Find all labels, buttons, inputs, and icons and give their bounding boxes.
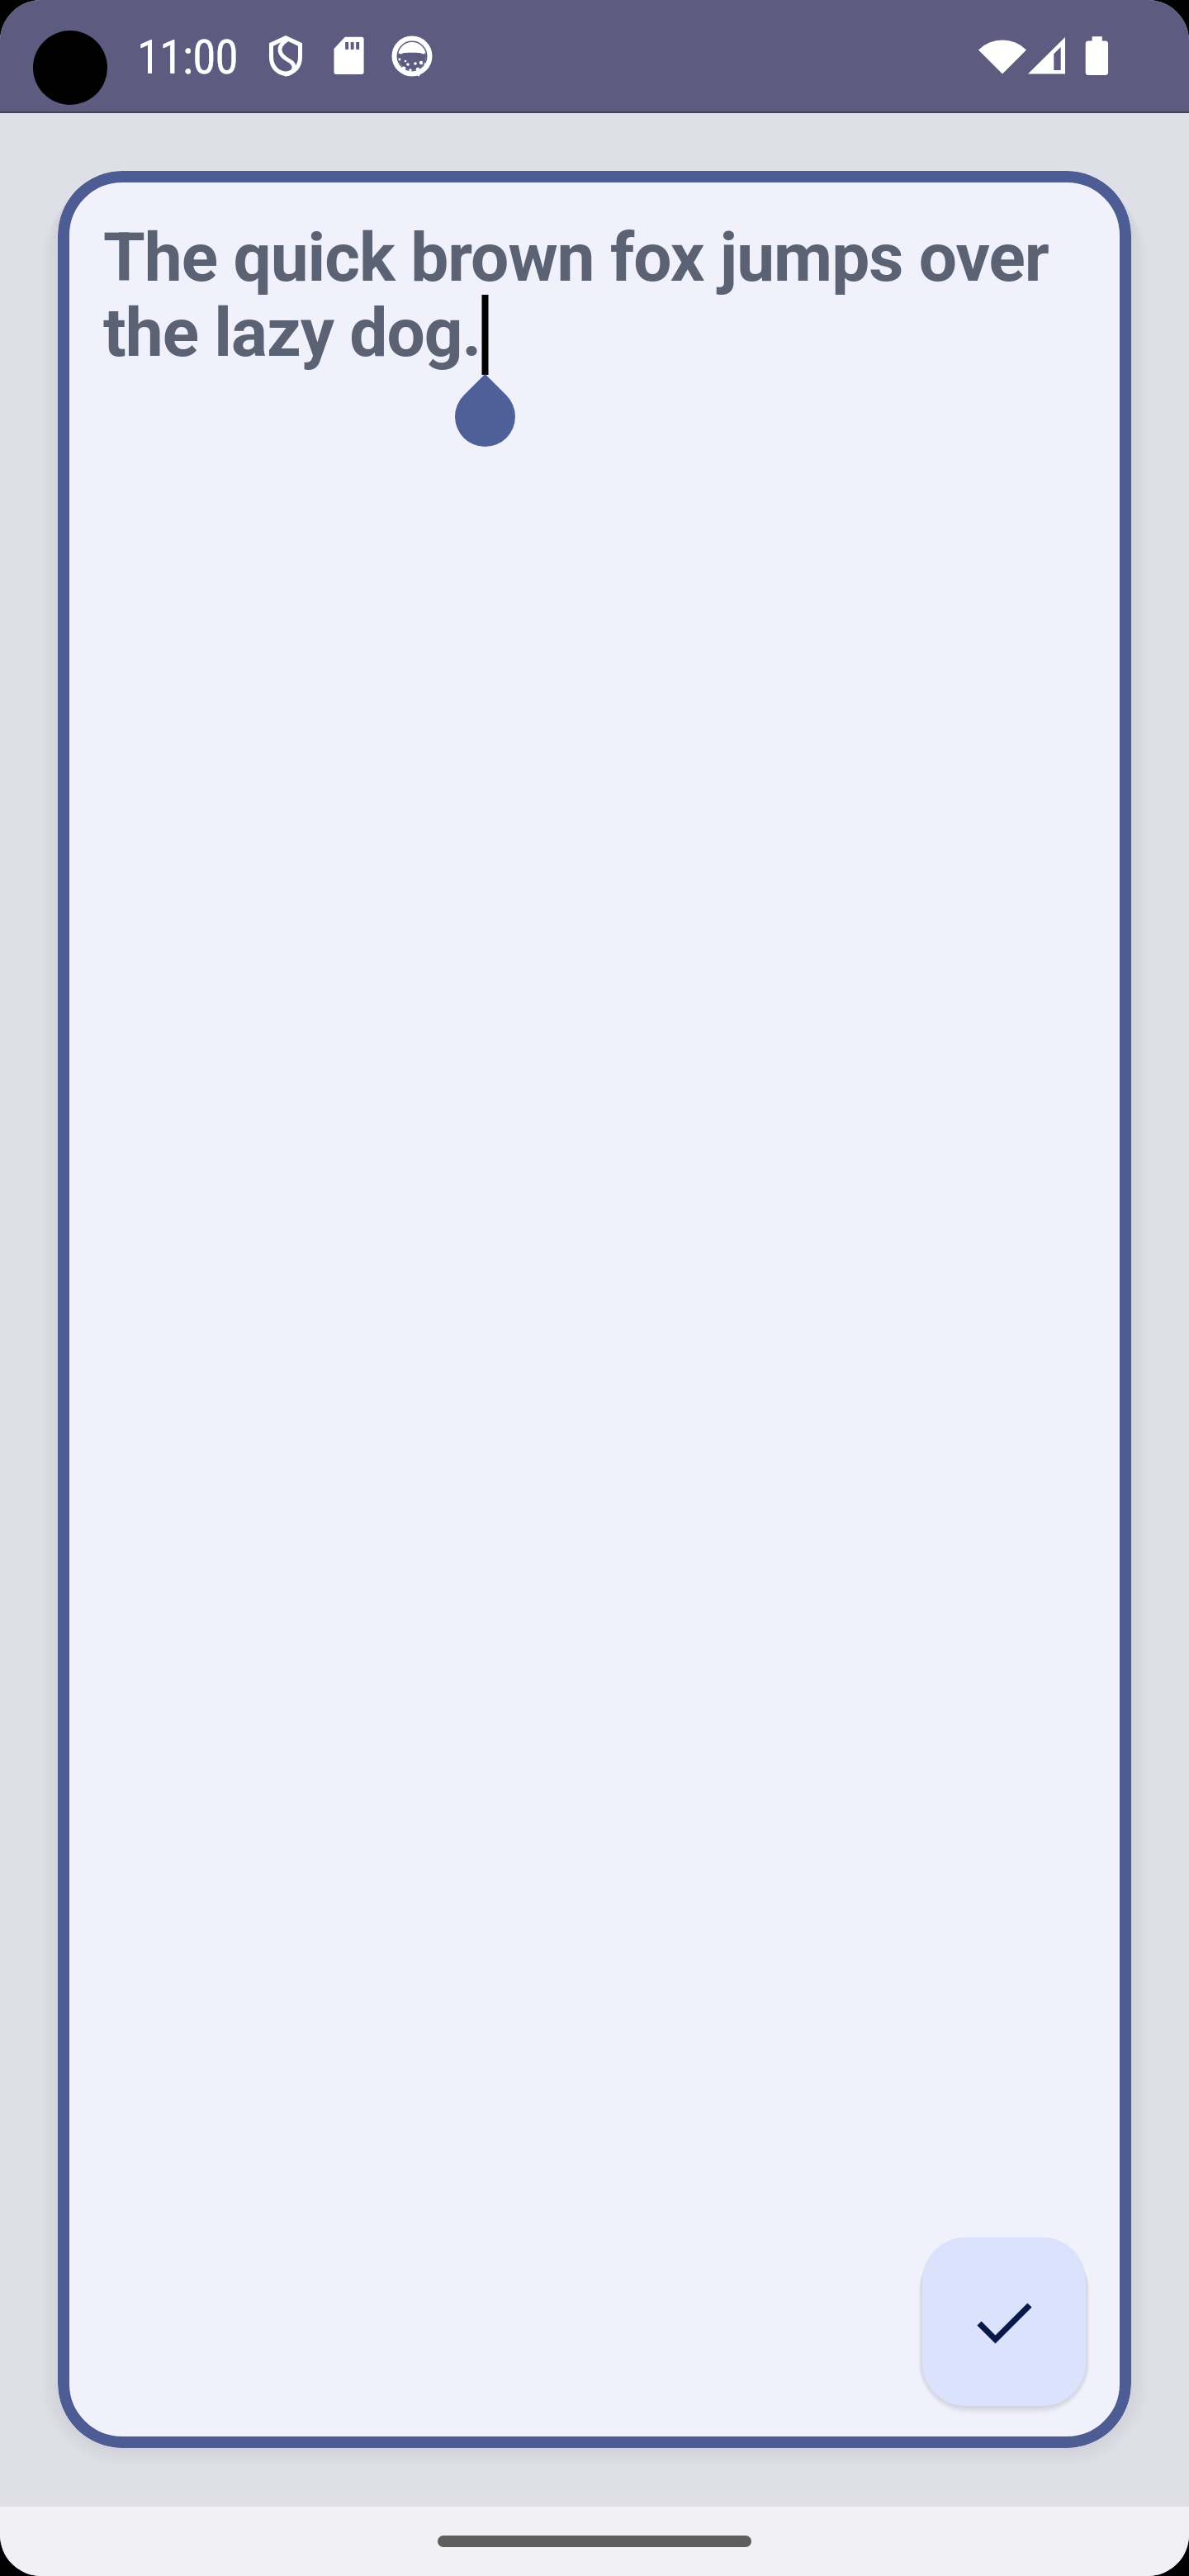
staticText: 11:00 (137, 30, 238, 85)
button[interactable]: The quick brown fox jumps over the lazy … (58, 171, 1131, 2448)
button[interactable]: Save note (922, 2237, 1086, 2406)
staticText: The quick brown fox jumps over the lazy … (103, 218, 1119, 372)
